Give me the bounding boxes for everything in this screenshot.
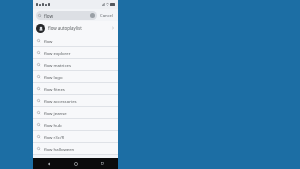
button[interactable]: Cancel: [99, 12, 115, 20]
staticText: flow hub: [44, 122, 62, 128]
button[interactable]: flow jeanse: [33, 107, 118, 118]
button[interactable]: flow explorer: [33, 47, 118, 58]
button[interactable]: flow: [33, 35, 118, 46]
staticText: flow: [44, 38, 53, 44]
button[interactable]: Back: [39, 158, 59, 169]
staticText: flow accessories: [44, 98, 77, 104]
button[interactable]: flow hub: [33, 119, 118, 130]
button[interactable]: flow: [36, 11, 97, 20]
staticText: flow explorer: [44, 50, 71, 56]
staticText: Cancel: [100, 13, 114, 19]
staticText: flow halloween: [44, 146, 75, 152]
button[interactable]: flow halloween: [33, 143, 118, 154]
staticText: flow autoplaylist: [48, 25, 111, 31]
staticText: flow: [44, 13, 54, 19]
staticText: flow fitnes: [44, 86, 65, 92]
staticText: flow matrices: [44, 62, 72, 68]
staticText: flow logo: [44, 74, 63, 80]
button[interactable]: flow autoplaylist: [33, 21, 118, 35]
button[interactable]: flow r3c/fl: [33, 131, 118, 142]
button[interactable]: flow fitnes: [33, 83, 118, 94]
staticText: flow r3c/fl: [44, 134, 65, 140]
button[interactable]: flow accessories: [33, 95, 118, 106]
button[interactable]: Home: [66, 158, 86, 169]
button[interactable]: flow matrices: [33, 59, 118, 70]
button[interactable]: Voice search: [90, 13, 95, 18]
staticText: flow jeanse: [44, 110, 67, 116]
other: More: [111, 26, 115, 30]
button[interactable]: Recents: [92, 158, 112, 169]
button[interactable]: flow logo: [33, 71, 118, 82]
